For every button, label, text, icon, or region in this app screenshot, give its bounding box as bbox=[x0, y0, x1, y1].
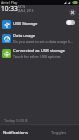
staticText: JAN 4, 2016 bbox=[18, 9, 34, 13]
staticText: 10:33 bbox=[1, 4, 18, 13]
staticText: Today 0.00 B bbox=[4, 118, 28, 123]
staticText: Toggles bbox=[51, 130, 67, 136]
staticText: Touch for other USB options bbox=[13, 54, 61, 59]
staticText: USB Storage bbox=[13, 21, 38, 27]
staticText: Notifications bbox=[3, 130, 28, 136]
button[interactable]: Connected as USB storage bbox=[2, 46, 76, 60]
button[interactable]: Data usage bbox=[2, 31, 76, 45]
button[interactable]: Notifications bbox=[0, 125, 39, 140]
button[interactable]: Toggle USB storage bbox=[66, 20, 75, 25]
staticText: MON bbox=[18, 5, 26, 9]
button[interactable]: Clear all notifications bbox=[69, 9, 76, 16]
staticText: Do you want to set a data usage limit? bbox=[13, 39, 76, 44]
staticText: Data usage bbox=[13, 33, 36, 39]
button[interactable]: USB Storage bbox=[2, 17, 76, 31]
staticText: Connected as USB storage bbox=[13, 48, 65, 54]
button[interactable]: Toggles bbox=[39, 125, 79, 140]
staticText: Airtel Play bbox=[1, 0, 18, 5]
